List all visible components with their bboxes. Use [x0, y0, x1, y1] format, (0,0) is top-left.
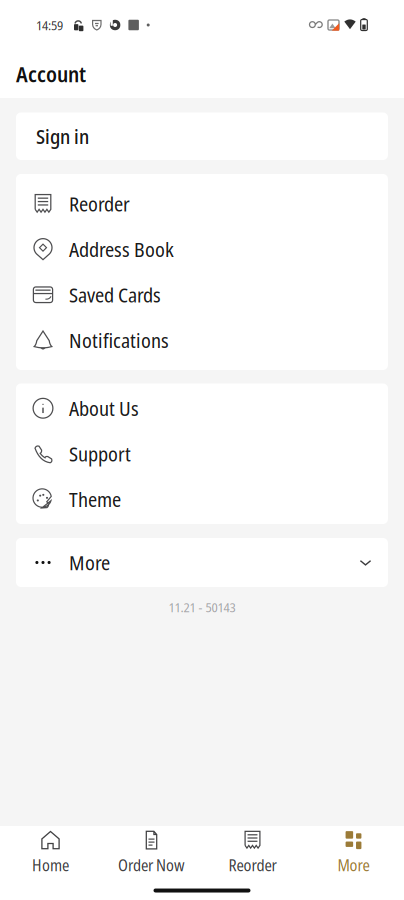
staticText: 14:59: [36, 16, 63, 34]
staticText: Saved Cards: [69, 281, 161, 308]
button[interactable]: More: [16, 538, 388, 587]
button[interactable]: Reorder: [16, 181, 388, 226]
button[interactable]: About Us: [16, 385, 388, 431]
staticText: More: [69, 549, 110, 576]
staticText: Notifications: [69, 327, 169, 354]
button[interactable]: Saved Cards: [16, 272, 388, 317]
staticText: Theme: [69, 486, 121, 513]
staticText: About Us: [69, 395, 139, 422]
button[interactable]: More: [303, 826, 404, 880]
staticText: Address Book: [69, 236, 174, 263]
button[interactable]: Sign in: [16, 112, 388, 160]
staticText: Order Now: [118, 854, 185, 876]
button[interactable]: Theme: [16, 476, 388, 522]
staticText: 11.21 - 50143: [168, 598, 235, 616]
button[interactable]: Home: [0, 826, 101, 880]
button[interactable]: Support: [16, 431, 388, 476]
button[interactable]: Reorder: [202, 826, 303, 880]
staticText: Sign in: [36, 123, 89, 150]
staticText: Support: [69, 440, 131, 467]
button[interactable]: Order Now: [101, 826, 202, 880]
button[interactable]: Notifications: [16, 317, 388, 363]
staticText: More: [337, 854, 369, 876]
staticText: Account: [16, 59, 86, 89]
staticText: Reorder: [69, 190, 130, 217]
staticText: Reorder: [228, 854, 276, 876]
button[interactable]: Address Book: [16, 226, 388, 272]
staticText: Home: [32, 854, 69, 876]
